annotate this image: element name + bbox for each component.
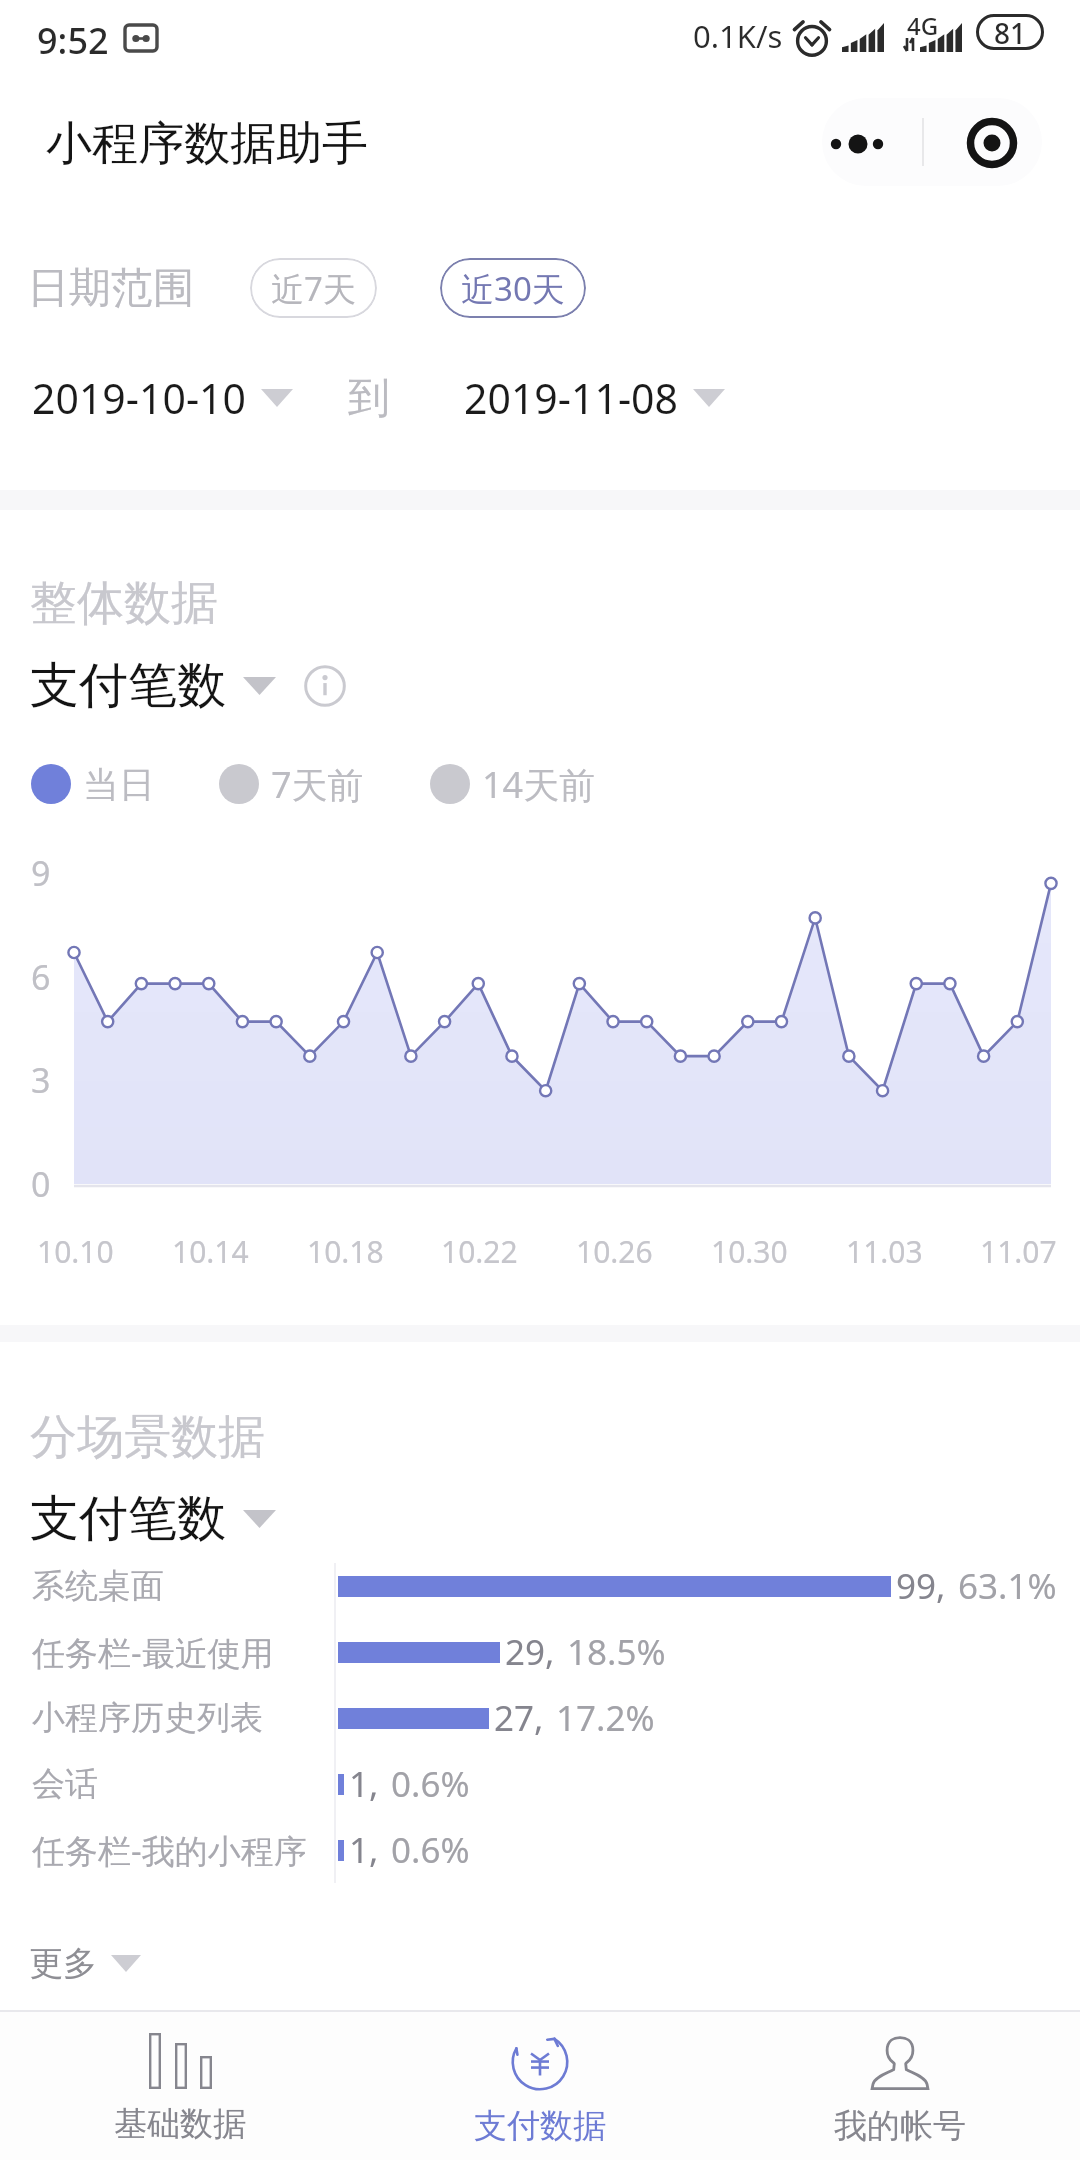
staticText: 近7天	[271, 266, 356, 311]
staticText: 10.26	[576, 1231, 653, 1272]
staticText: 99,	[896, 1562, 946, 1610]
button[interactable]: 支付数据	[360, 2012, 720, 2160]
staticText: 0	[31, 1161, 51, 1207]
staticText: 2019-11-08	[464, 370, 679, 426]
staticText: 更多	[29, 1942, 97, 1985]
staticText: 27,	[494, 1694, 544, 1742]
staticText: 9:52	[37, 16, 109, 65]
button[interactable]: More options	[822, 98, 932, 186]
staticText: 2019-10-10	[32, 370, 247, 426]
staticText: 81	[994, 14, 1027, 50]
button[interactable]: 我的帐号	[720, 2012, 1080, 2160]
staticText: 10.22	[441, 1231, 518, 1272]
staticText: 0.6%	[391, 1760, 470, 1808]
staticText: 日期范围	[27, 262, 195, 315]
button[interactable]: 更多	[29, 1942, 141, 1985]
staticText: 29,	[505, 1628, 555, 1676]
button[interactable]: 任务栏-我的小程序	[0, 1817, 1080, 1883]
staticText: 10.18	[307, 1231, 384, 1272]
staticText: 0.1K/s	[693, 15, 783, 57]
staticText: 1,	[349, 1760, 379, 1808]
staticText: 分场景数据	[30, 1408, 265, 1467]
button[interactable]: 当日	[31, 760, 155, 808]
staticText: 11.03	[846, 1231, 923, 1272]
button[interactable]: 系统桌面	[0, 1553, 1080, 1619]
button[interactable]: 7天前	[219, 760, 364, 808]
button[interactable]: 基础数据	[0, 2012, 360, 2160]
staticText: 我的帐号	[834, 2105, 966, 2147]
staticText: 18.5%	[567, 1628, 666, 1676]
staticText: 9	[31, 850, 51, 896]
staticText: 4G	[907, 9, 939, 42]
button[interactable]: 支付笔数	[30, 655, 276, 717]
staticText: 63.1%	[958, 1562, 1057, 1610]
button[interactable]: Info	[304, 665, 346, 707]
staticText: 支付笔数	[30, 655, 226, 717]
staticText: 6	[31, 954, 51, 1000]
button[interactable]: Close mini program	[932, 98, 1042, 186]
staticText: 14天前	[482, 760, 596, 808]
staticText: 整体数据	[30, 574, 218, 633]
staticText: 10.14	[172, 1231, 249, 1272]
button[interactable]: 2019-10-10	[32, 370, 293, 426]
staticText: 小程序历史列表	[32, 1697, 263, 1739]
staticText: 小程序数据助手	[46, 115, 368, 173]
button[interactable]: 近7天	[250, 258, 377, 318]
button[interactable]: 任务栏-最近使用	[0, 1619, 1080, 1685]
staticText: 支付数据	[474, 2105, 606, 2147]
button[interactable]: 近30天	[440, 258, 586, 318]
staticText: 基础数据	[114, 2103, 246, 2145]
staticText: 任务栏-我的小程序	[32, 1828, 307, 1873]
staticText: 系统桌面	[32, 1565, 164, 1607]
button[interactable]: 2019-11-08	[464, 370, 725, 426]
staticText: 会话	[32, 1763, 98, 1805]
staticText: 近30天	[461, 266, 565, 311]
staticText: 11.07	[980, 1231, 1057, 1272]
staticText: 10.10	[37, 1231, 114, 1272]
staticText: 支付笔数	[30, 1488, 226, 1550]
staticText: 1,	[349, 1826, 379, 1874]
button[interactable]: 小程序历史列表	[0, 1685, 1080, 1751]
button[interactable]: 支付笔数	[30, 1488, 276, 1550]
staticText: 3	[31, 1057, 51, 1103]
staticText: 到	[348, 372, 390, 425]
staticText: 17.2%	[556, 1694, 655, 1742]
staticText: 任务栏-最近使用	[32, 1630, 274, 1675]
button[interactable]: 14天前	[430, 760, 596, 808]
button[interactable]: 会话	[0, 1751, 1080, 1817]
staticText: 当日	[83, 762, 155, 807]
staticText: 0.6%	[391, 1826, 470, 1874]
staticText: 10.30	[711, 1231, 788, 1272]
staticText: 7天前	[271, 760, 364, 808]
